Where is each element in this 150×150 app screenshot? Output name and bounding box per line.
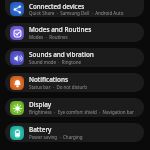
button[interactable]: Connected devices bbox=[5, 0, 144, 17]
staticText: Modes and Routines bbox=[29, 25, 92, 34]
button[interactable]: Notifications bbox=[5, 73, 144, 92]
staticText: Connected devices bbox=[29, 2, 85, 10]
staticText: Power saving · Charging bbox=[29, 134, 83, 140]
staticText: Battery bbox=[29, 125, 52, 134]
other: Notifications bbox=[10, 76, 24, 90]
other: Display bbox=[10, 101, 24, 115]
button[interactable]: Display bbox=[5, 98, 144, 117]
staticText: Notifications bbox=[29, 75, 69, 84]
other: Connected devices bbox=[10, 2, 24, 16]
other: Modes and Routines bbox=[10, 26, 24, 40]
staticText: Brightness · Eye comfort shield · Naviga… bbox=[29, 109, 134, 115]
other: Sounds and vibration bbox=[10, 51, 24, 65]
button[interactable]: Modes and Routines bbox=[5, 23, 144, 42]
staticText: Status bar · Do not disturb bbox=[29, 84, 87, 90]
button[interactable]: Sounds and vibration bbox=[5, 48, 144, 67]
other: Battery bbox=[10, 126, 24, 140]
button[interactable]: Battery bbox=[5, 123, 144, 142]
staticText: Sound mode · Ringtone bbox=[29, 59, 81, 65]
staticText: Modes · Routines bbox=[29, 34, 68, 40]
staticText: Quick Share · Samsung DeX · Android Auto bbox=[29, 10, 124, 16]
staticText: Sounds and vibration bbox=[29, 50, 94, 59]
staticText: Display bbox=[29, 100, 52, 109]
